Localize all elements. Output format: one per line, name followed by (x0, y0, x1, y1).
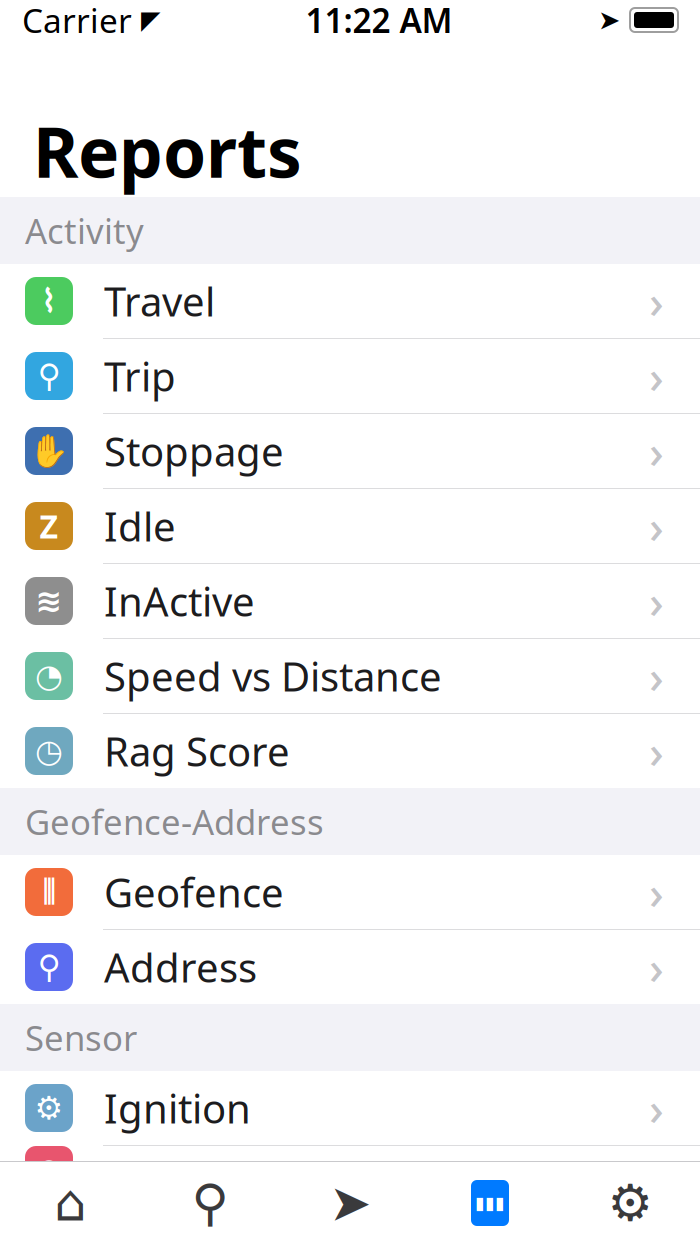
staticText: Z (39, 505, 58, 547)
button[interactable]: ⚙ (0, 1071, 700, 1145)
staticText: › (649, 571, 664, 631)
staticText: ⚲ (37, 358, 60, 394)
staticText: › (649, 496, 664, 556)
staticText: › (649, 1078, 664, 1138)
staticText: 11:22 AM (305, 0, 452, 42)
button[interactable]: Home (0, 1162, 140, 1244)
button[interactable]: Reports (420, 1162, 560, 1244)
staticText: › (649, 271, 664, 331)
button[interactable]: ⌇ (0, 264, 700, 338)
staticText: › (649, 937, 664, 997)
staticText: › (649, 721, 664, 781)
staticText: ⦀ (42, 876, 56, 908)
staticText: Rag Score (104, 724, 290, 777)
staticText: ⚲ (37, 949, 60, 985)
staticText: ◔ (35, 658, 63, 694)
staticText: Address (104, 940, 257, 993)
staticText: Activity (25, 207, 144, 253)
staticText: › (649, 862, 664, 922)
button[interactable]: ◔ (0, 639, 700, 713)
staticText: ⚲ (191, 1174, 228, 1232)
staticText: Geofence-Address (25, 798, 324, 844)
staticText: ➤ (598, 5, 620, 35)
staticText: › (649, 421, 664, 481)
button[interactable]: Settings (560, 1162, 700, 1244)
staticText: Reports (33, 105, 302, 197)
staticText: Stoppage (104, 424, 284, 477)
button[interactable]: ✋ (0, 414, 700, 488)
button[interactable]: ⚲ (0, 930, 700, 1004)
button[interactable]: Z (0, 489, 700, 563)
staticText: Trip (104, 349, 176, 402)
staticText: Carrier (22, 0, 132, 42)
staticText: Ignition (104, 1081, 251, 1134)
button[interactable]: ≋ (0, 564, 700, 638)
staticText: InActive (104, 574, 255, 627)
staticText: ⚙ (34, 1090, 63, 1126)
staticText: ◉ (35, 1152, 63, 1188)
staticText: ≋ (35, 583, 62, 619)
staticText: ▮▮▮ (475, 1193, 505, 1213)
staticText: ◷ (35, 733, 63, 769)
staticText: ⌇ (41, 283, 57, 319)
staticText: › (649, 346, 664, 406)
staticText: › (649, 646, 664, 706)
staticText: Travel (104, 274, 215, 327)
button[interactable]: Navigate (280, 1162, 420, 1244)
button[interactable]: Places (140, 1162, 280, 1244)
staticText: ⚙ (607, 1174, 652, 1232)
staticText: Idle (104, 499, 176, 552)
staticText: ➤ (329, 1174, 371, 1232)
staticText: Sensor (25, 1014, 137, 1060)
staticText: Geofence (104, 865, 284, 918)
staticText: ⌂ (54, 1174, 86, 1232)
button[interactable]: ⦀ (0, 855, 700, 929)
staticText: Speed vs Distance (104, 649, 442, 702)
staticText: ✋ (29, 433, 69, 469)
staticText: ◤ (141, 6, 160, 34)
button[interactable]: ◷ (0, 714, 700, 788)
button[interactable]: ⚲ (0, 339, 700, 413)
